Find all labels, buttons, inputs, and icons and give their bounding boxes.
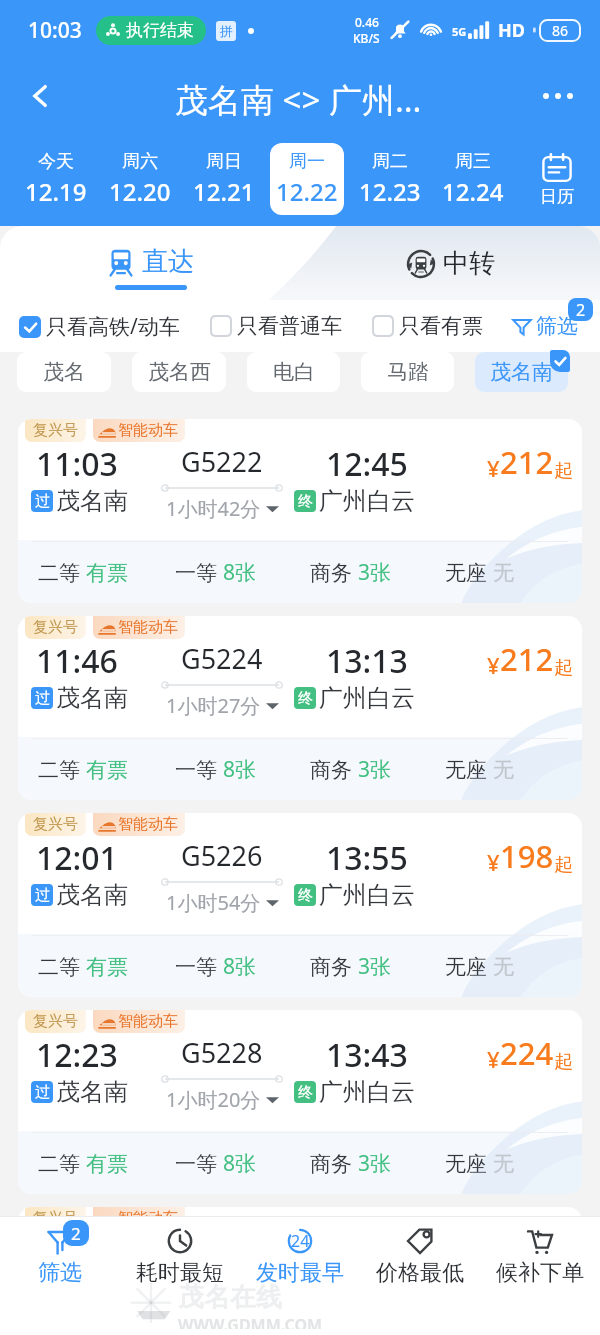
staticText: 终 [298,886,313,905]
staticText: 12.23 [359,175,421,208]
staticText: 复兴号 [33,1209,78,1216]
staticText: 商务 [310,560,352,586]
staticText: 无 [493,560,514,586]
staticText: 终 [298,492,313,511]
button[interactable]: 筛选 [508,307,580,345]
button[interactable]: 只看有票 [372,313,483,339]
staticText: ¥ [487,650,500,680]
staticText: 终 [298,689,313,708]
button[interactable]: 周日 [182,132,265,226]
staticText: 电白 [273,359,315,385]
staticText: 11:46 [36,639,118,683]
staticText: 过 [35,886,50,905]
staticText: 无座 [445,954,487,980]
staticText: 一等 [175,560,217,586]
button[interactable]: 只看普通车 [210,313,342,339]
staticText: KB/S [353,30,380,46]
button[interactable]: 茂名 [17,352,111,392]
staticText: 只看有票 [399,313,483,339]
staticText: 复兴号 [33,421,78,440]
button[interactable]: More options [532,70,584,122]
staticText: 执行结束 [126,20,194,41]
staticText: 二等 [38,757,80,783]
button[interactable]: 今天 [14,132,98,226]
button[interactable]: 周三 [431,132,514,226]
staticText: 智能动车 [118,815,178,834]
staticText: 日历 [540,186,574,207]
staticText: 茂名南 [490,359,553,385]
staticText: 智能动车 [118,1209,178,1216]
button[interactable]: Back [14,70,66,122]
staticText: 有票 [86,560,128,586]
staticText: 只看高铁/动车 [46,312,180,341]
staticText: 起 [554,459,573,483]
staticText: 12.21 [193,175,255,208]
staticText: 周三 [455,150,491,173]
button[interactable]: 周六 [98,132,182,226]
staticText: 12:01 [36,836,118,880]
button[interactable]: 耗时最短 [120,1217,240,1335]
staticText: 无座 [445,560,487,586]
staticText: 起 [554,853,573,877]
button[interactable]: 价格最低 [360,1217,480,1335]
staticText: ¥ [487,453,500,483]
staticText: 马踏 [387,359,429,385]
staticText: 3张 [358,558,392,587]
staticText: HD [498,18,525,43]
button[interactable]: 24 [240,1217,360,1335]
staticText: 无 [493,1151,514,1177]
staticText: G5224 [181,640,263,677]
staticText: 一等 [175,757,217,783]
button[interactable]: 2 [0,1217,120,1335]
button[interactable]: 周一 [265,132,348,226]
button[interactable]: 茂名南 [475,352,568,392]
staticText: 有票 [86,954,128,980]
staticText: 茂名南 <> 广州... [175,77,422,122]
staticText: G5222 [181,443,263,480]
staticText: 12.19 [25,175,87,208]
staticText: 茂名南 [56,1077,128,1107]
staticText: 212 [500,441,554,483]
staticText: 2 [576,299,586,321]
button[interactable]: 日历 [514,132,600,226]
staticText: 12.24 [442,175,504,208]
button[interactable]: 候补下单 [480,1217,600,1335]
staticText: 3张 [358,755,392,784]
staticText: 拼 [220,23,233,39]
button[interactable]: 复兴号 [18,1207,582,1216]
staticText: 1小时20分 [166,1086,261,1113]
button[interactable]: 复兴号 [18,813,582,997]
button[interactable]: 复兴号 [18,616,582,800]
button[interactable]: 直达 [0,226,300,300]
staticText: ¥ [487,1044,500,1074]
button[interactable]: 只看高铁/动车 [19,312,180,341]
staticText: 茂名 [43,359,85,385]
staticText: 3张 [358,1149,392,1178]
staticText: 发时最早 [256,1259,344,1287]
staticText: 起 [554,1050,573,1074]
button[interactable]: 复兴号 [18,1010,582,1194]
staticText: 8张 [223,558,257,587]
staticText: 10:03 [28,16,82,45]
button[interactable]: 电白 [247,352,340,392]
button[interactable]: 周二 [348,132,431,226]
staticText: G5226 [181,837,263,874]
staticText: 5G [452,24,467,39]
button[interactable]: 中转 [300,226,600,300]
staticText: 终 [298,1083,313,1102]
staticText: 8张 [223,952,257,981]
staticText: 广州白云 [319,1077,415,1107]
staticText: 11:03 [36,442,118,486]
staticText: ¥ [487,847,500,877]
button[interactable]: 茂名西 [132,352,226,392]
staticText: 广州白云 [319,486,415,516]
staticText: 智能动车 [118,1012,178,1031]
staticText: 一等 [175,1151,217,1177]
staticText: 复兴号 [33,815,78,834]
button[interactable]: 马踏 [361,352,454,392]
button[interactable]: 复兴号 [18,419,582,603]
staticText: 8张 [223,755,257,784]
staticText: 无座 [445,1151,487,1177]
staticText: 一等 [175,954,217,980]
staticText: 茂名南 [56,880,128,910]
